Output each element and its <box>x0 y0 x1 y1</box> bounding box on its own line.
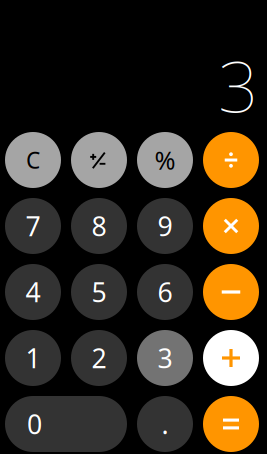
staticText: C <box>26 145 40 175</box>
button[interactable]: Minus <box>203 264 259 320</box>
staticText: 7 <box>25 208 40 244</box>
button[interactable]: 0 <box>5 396 127 452</box>
staticText: 0 <box>27 406 42 442</box>
staticText: 2 <box>91 340 106 376</box>
staticText: 1 <box>25 340 40 376</box>
button[interactable]: 4 <box>5 264 61 320</box>
button[interactable]: Plus <box>203 330 259 386</box>
button[interactable]: % <box>137 132 193 188</box>
button[interactable]: 7 <box>5 198 61 254</box>
staticText: 4 <box>25 274 40 310</box>
staticText: 6 <box>157 274 172 310</box>
button[interactable]: . <box>137 396 193 452</box>
button[interactable]: 1 <box>5 330 61 386</box>
button[interactable]: Divide <box>203 132 259 188</box>
staticText: 3 <box>157 340 172 376</box>
button[interactable]: Multiply <box>203 198 259 254</box>
staticText: 5 <box>91 274 106 310</box>
staticText: . <box>161 406 168 442</box>
button[interactable]: 9 <box>137 198 193 254</box>
button[interactable]: Toggle sign <box>71 132 127 188</box>
button[interactable]: 2 <box>71 330 127 386</box>
staticText: % <box>154 143 175 177</box>
staticText: 3 <box>218 38 258 132</box>
staticText: 8 <box>91 208 106 244</box>
button[interactable]: Equals <box>203 396 259 452</box>
button[interactable]: C <box>5 132 61 188</box>
staticText: 9 <box>157 208 172 244</box>
button[interactable]: 8 <box>71 198 127 254</box>
button[interactable]: 6 <box>137 264 193 320</box>
button[interactable]: 5 <box>71 264 127 320</box>
button[interactable]: 3 <box>137 330 193 386</box>
